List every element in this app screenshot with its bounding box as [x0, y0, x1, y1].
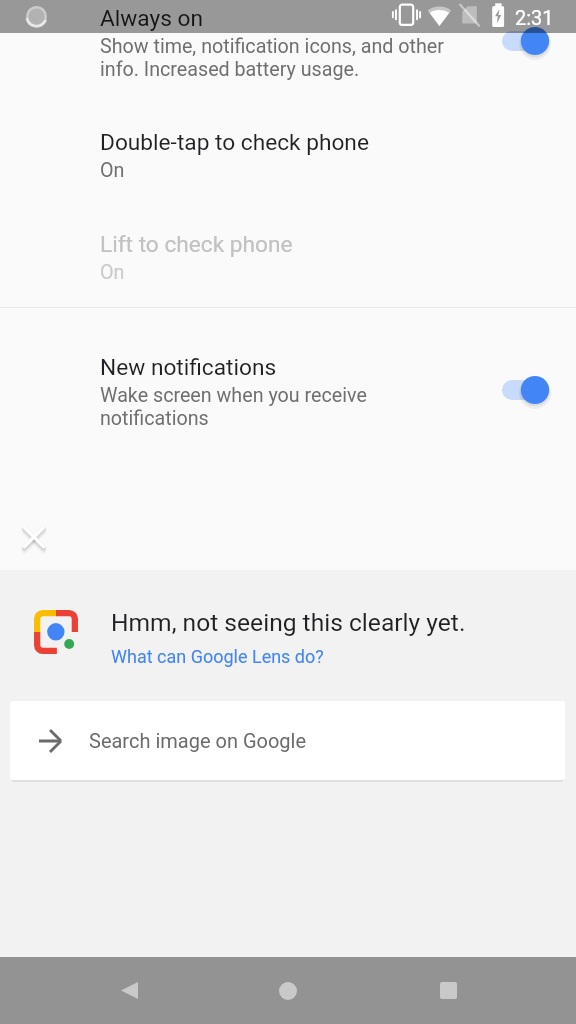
button[interactable]: Search image on Google: [10, 701, 565, 780]
staticText: Double-tap to check phone: [100, 129, 369, 156]
staticText: New notifications: [100, 354, 277, 381]
staticText: Lift to check phone: [100, 231, 293, 258]
staticText: Hmm, not seeing this clearly yet.: [111, 608, 466, 637]
button[interactable]: Close: [18, 521, 50, 553]
button[interactable]: Toggle: [494, 372, 566, 408]
staticText: Search image on Google: [89, 729, 307, 752]
button[interactable]: What can Google Lens do?: [111, 646, 324, 667]
button[interactable]: Back: [69, 957, 189, 1024]
button[interactable]: Toggle: [494, 23, 566, 59]
button[interactable]: Recents: [388, 957, 508, 1024]
staticText: Always on: [100, 5, 204, 32]
button[interactable]: Home: [228, 957, 348, 1024]
staticText: On: [100, 159, 125, 182]
staticText: Wake screen when you receive notificatio…: [100, 384, 367, 430]
staticText: 2:31: [515, 6, 554, 29]
button[interactable]: Double-tap to check phone: [0, 129, 576, 199]
button[interactable]: New notifications: [0, 354, 576, 450]
button[interactable]: Lift to check phone: [0, 231, 576, 301]
staticText: Show time, notification icons, and other…: [100, 35, 444, 81]
button[interactable]: Always on: [0, 5, 576, 101]
staticText: On: [100, 261, 125, 284]
